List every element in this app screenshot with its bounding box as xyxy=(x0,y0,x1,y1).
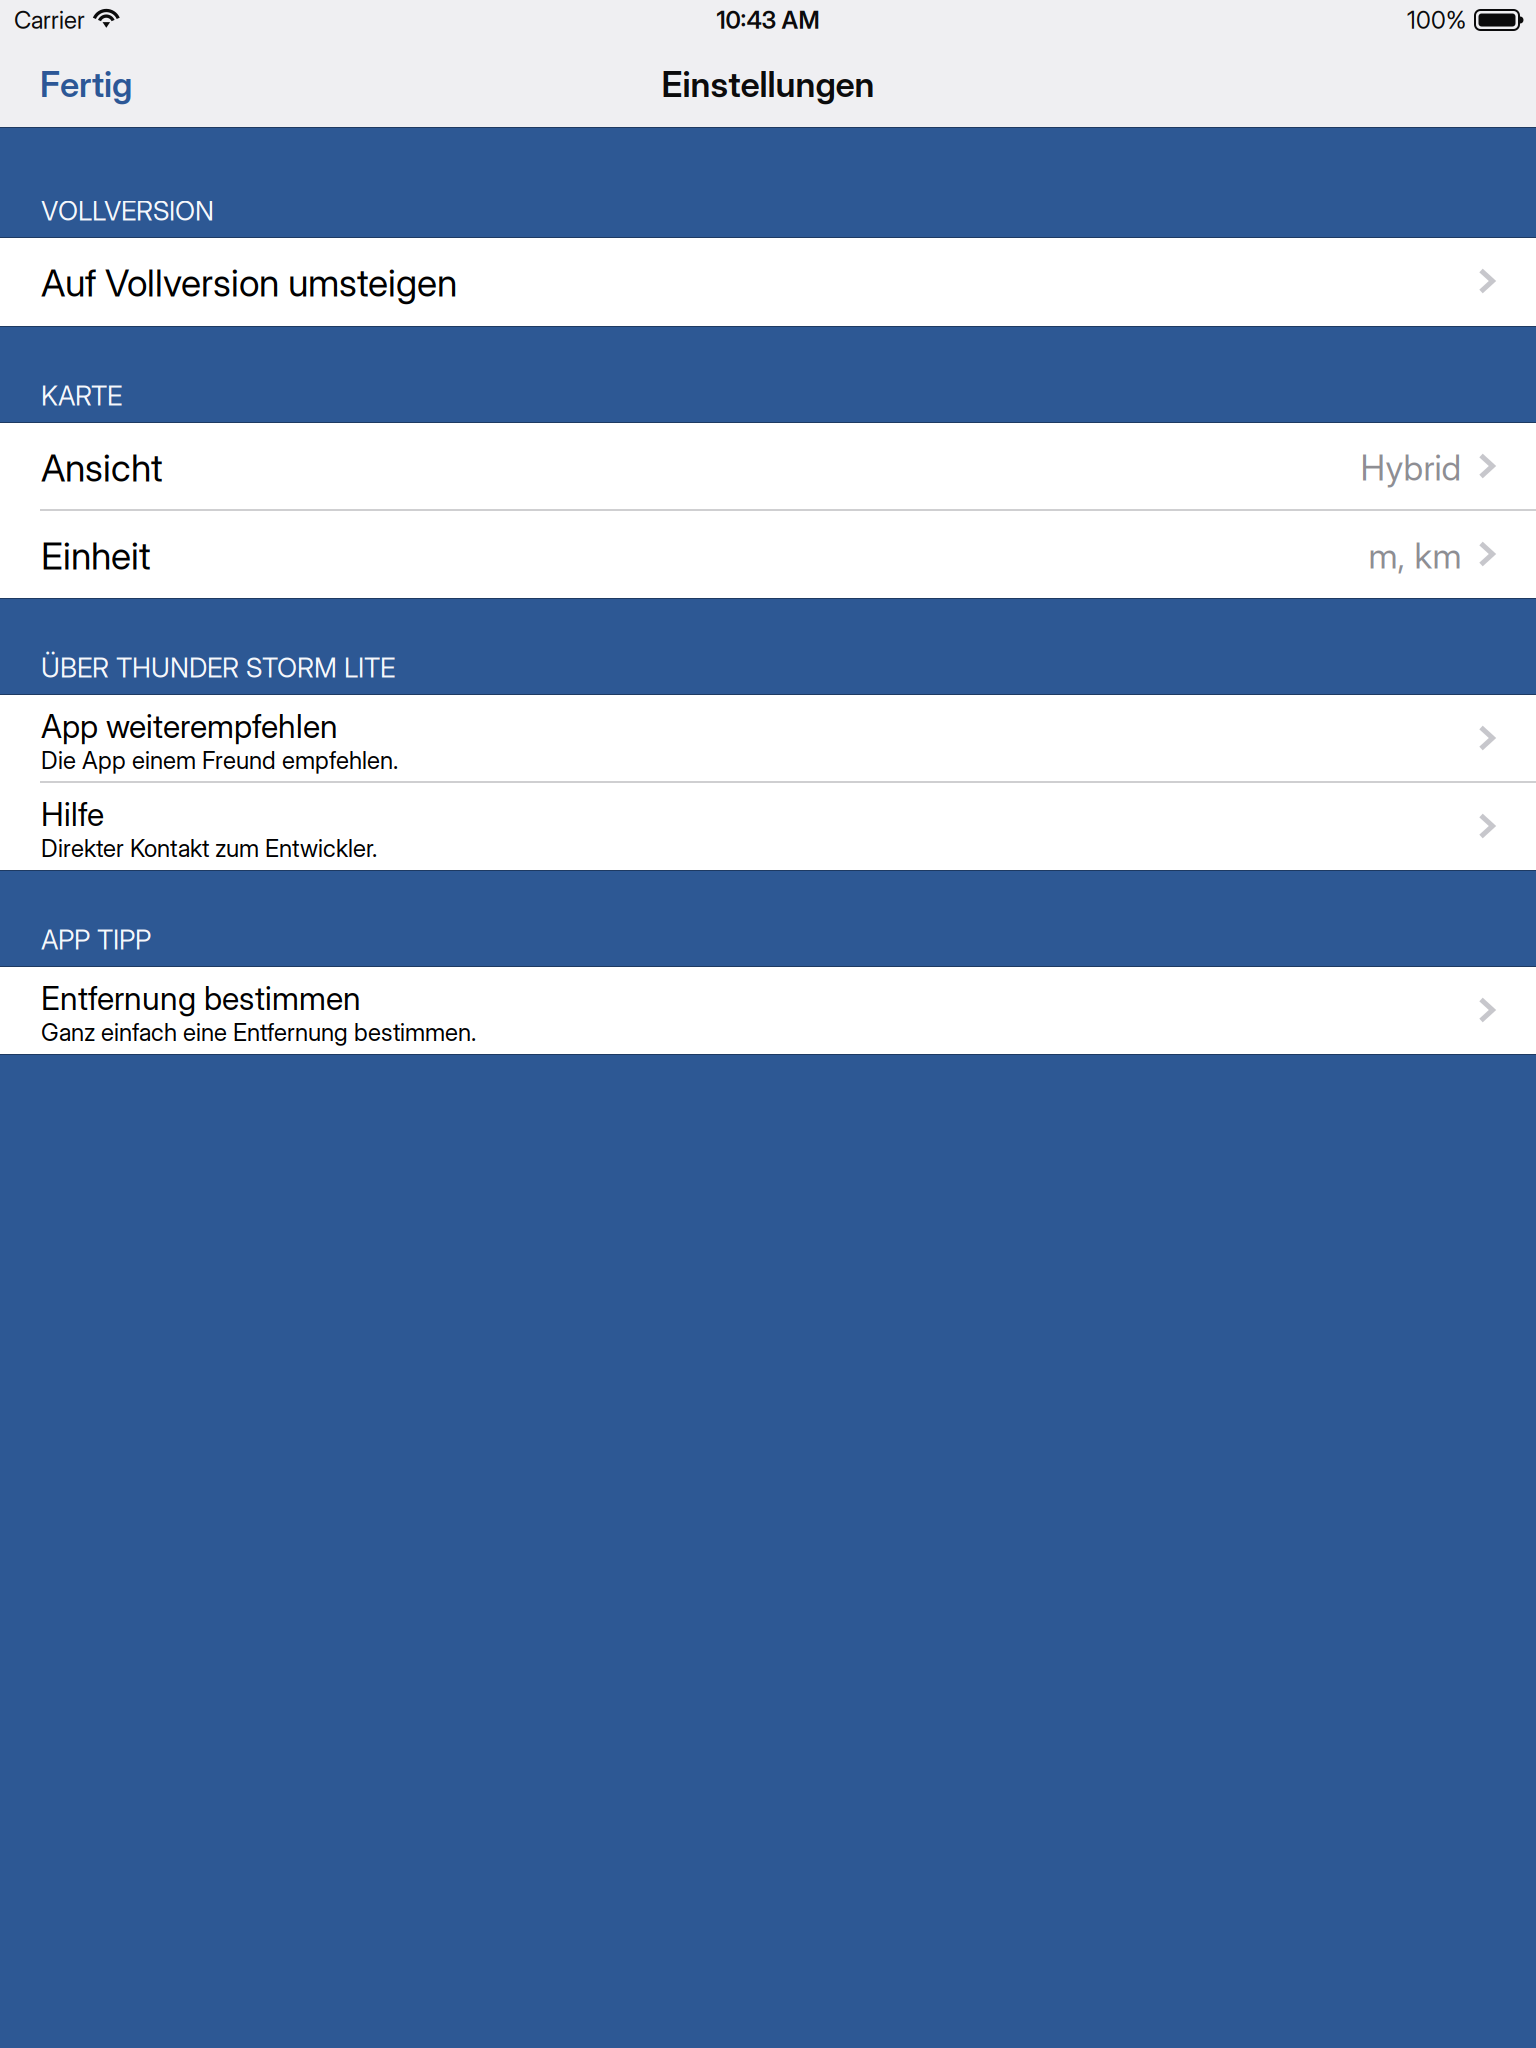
staticText: KARTE xyxy=(41,380,122,412)
button[interactable]: Ansicht xyxy=(0,423,1536,511)
staticText: App weiterempfehlen xyxy=(41,707,338,746)
staticText: Hybrid xyxy=(1360,447,1461,489)
staticText: Auf Vollversion umsteigen xyxy=(41,260,457,306)
staticText: Ganz einfach eine Entfernung bestimmen. xyxy=(41,1018,476,1047)
staticText: APP TIPP xyxy=(41,924,151,956)
staticText: Einstellungen xyxy=(661,63,874,105)
button[interactable]: Entfernung bestimmen xyxy=(0,967,1536,1054)
staticText: Fertig xyxy=(40,63,132,105)
button[interactable]: Fertig xyxy=(0,44,154,125)
staticText: Hilfe xyxy=(41,795,104,834)
button[interactable]: Hilfe xyxy=(0,783,1536,870)
button[interactable]: App weiterempfehlen xyxy=(0,695,1536,783)
staticText: VOLLVERSION xyxy=(41,195,214,227)
button[interactable]: Einheit xyxy=(0,511,1536,598)
staticText: Ansicht xyxy=(41,445,163,491)
staticText: Direkter Kontakt zum Entwickler. xyxy=(41,834,377,863)
staticText: ÜBER THUNDER STORM LITE xyxy=(41,652,395,684)
staticText: Carrier xyxy=(14,5,85,34)
staticText: 100% xyxy=(1407,5,1466,34)
staticText: Einheit xyxy=(41,533,151,579)
staticText: Die App einem Freund empfehlen. xyxy=(41,746,398,775)
button[interactable]: Auf Vollversion umsteigen xyxy=(0,238,1536,326)
staticText: 10:43 AM xyxy=(716,5,819,34)
staticText: m, km xyxy=(1368,535,1461,577)
staticText: Entfernung bestimmen xyxy=(41,979,361,1018)
